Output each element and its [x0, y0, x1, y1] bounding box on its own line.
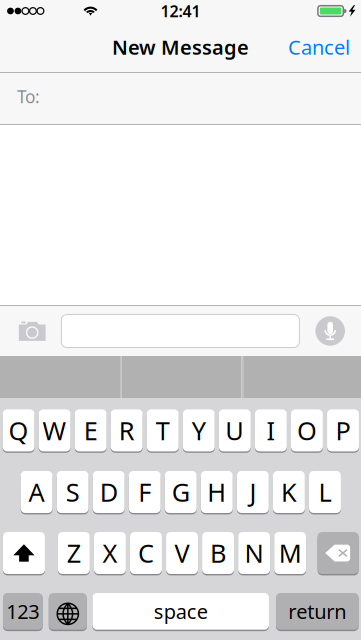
button[interactable]: A	[21, 471, 52, 514]
button[interactable]: Q	[3, 409, 34, 453]
staticText: New Message	[112, 34, 249, 60]
button[interactable]: H	[201, 471, 233, 514]
staticText: Q	[8, 414, 28, 447]
button[interactable]: return	[276, 593, 359, 631]
staticText: D	[100, 475, 118, 509]
button[interactable]: L	[309, 471, 341, 514]
staticText: U	[225, 414, 244, 447]
staticText: Z	[67, 536, 81, 570]
staticText: P	[335, 414, 350, 447]
button[interactable]: Dictate	[299, 309, 361, 353]
staticText: L	[318, 475, 331, 509]
staticText: K	[281, 475, 297, 509]
button[interactable]: S	[57, 471, 89, 514]
staticText: C	[138, 536, 154, 570]
button[interactable]: E	[75, 409, 107, 453]
button[interactable]: G	[165, 471, 197, 514]
staticText: E	[84, 414, 98, 447]
staticText: H	[207, 475, 226, 509]
button[interactable]: X	[94, 532, 126, 575]
button[interactable]: N	[238, 532, 270, 575]
button[interactable]: Z	[58, 532, 90, 575]
button[interactable]: Y	[183, 409, 215, 453]
button[interactable]: Shift	[3, 532, 45, 575]
button[interactable]: Camera	[0, 309, 61, 353]
staticText: return	[288, 598, 346, 625]
staticText: X	[102, 536, 117, 570]
button[interactable]: P	[327, 409, 359, 453]
staticText: R	[119, 414, 135, 447]
button[interactable]: To:	[0, 73, 361, 124]
button[interactable]: Next keyboard	[49, 593, 87, 631]
staticText: B	[210, 536, 226, 570]
button[interactable]: C	[130, 532, 162, 575]
staticText: I	[266, 414, 275, 447]
staticText: 12:41	[160, 0, 200, 22]
button[interactable]: K	[273, 471, 305, 514]
staticText: O	[297, 414, 317, 447]
button[interactable]: R	[111, 409, 143, 453]
button[interactable]: M	[274, 532, 306, 575]
button[interactable]: D	[93, 471, 125, 514]
button[interactable]: V	[166, 532, 198, 575]
staticText: Y	[192, 414, 206, 447]
staticText: 123	[6, 598, 39, 625]
button[interactable]: J	[237, 471, 269, 514]
button[interactable]: space	[92, 593, 269, 631]
staticText: A	[29, 475, 45, 509]
staticText: S	[66, 475, 80, 509]
staticText: N	[245, 536, 264, 570]
staticText: T	[156, 414, 170, 447]
button[interactable]: 123	[3, 593, 43, 631]
staticText: W	[43, 414, 67, 447]
button[interactable]: W	[39, 409, 70, 453]
staticText: Cancel	[288, 34, 350, 60]
staticText: space	[154, 598, 208, 625]
button[interactable]: U	[219, 409, 251, 453]
button[interactable]: I	[255, 409, 287, 453]
button[interactable]: T	[147, 409, 179, 453]
staticText: To:	[17, 85, 40, 108]
button[interactable]: Cancel	[279, 25, 359, 69]
staticText: J	[249, 475, 256, 509]
staticText: M	[279, 536, 302, 570]
button[interactable]: Delete	[318, 532, 359, 575]
staticText: V	[174, 536, 189, 570]
button[interactable]: B	[202, 532, 234, 575]
staticText: G	[172, 475, 190, 509]
button[interactable]	[61, 314, 299, 347]
button[interactable]: O	[291, 409, 323, 453]
staticText: F	[138, 475, 151, 509]
button[interactable]: F	[129, 471, 161, 514]
